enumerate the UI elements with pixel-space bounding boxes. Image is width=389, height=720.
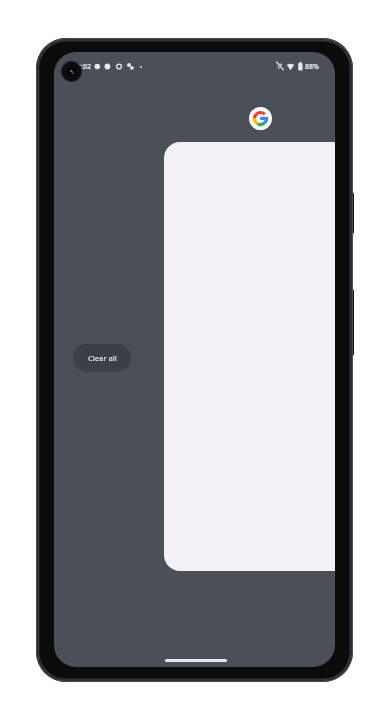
button[interactable] [164, 142, 335, 571]
staticText: 88% [305, 62, 319, 72]
staticText: 5:02 [77, 62, 91, 72]
button[interactable]: Clear all [73, 344, 131, 372]
staticText: Clear all [88, 353, 117, 363]
button[interactable] [249, 107, 272, 130]
